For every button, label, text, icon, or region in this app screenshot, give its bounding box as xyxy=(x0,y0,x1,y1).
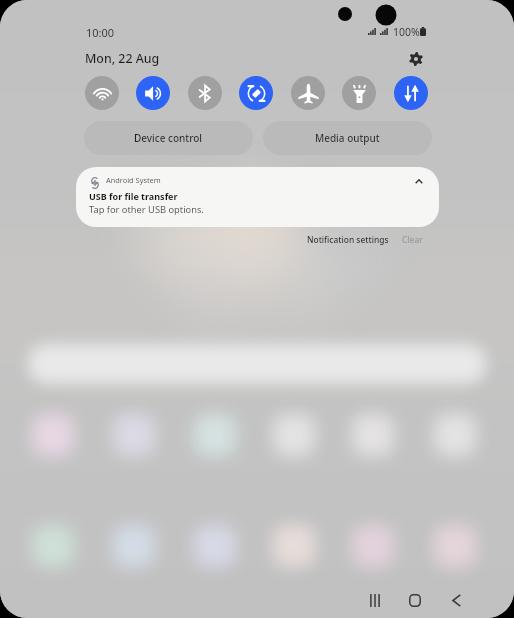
staticText: Media output xyxy=(315,131,380,145)
staticText: Mon, 22 Aug xyxy=(85,50,160,67)
button[interactable]: Media output xyxy=(263,121,432,155)
button[interactable]: Airplane mode xyxy=(291,76,325,110)
button[interactable]: Mobile data xyxy=(394,76,428,110)
button[interactable]: Recents xyxy=(358,583,392,617)
button[interactable]: Bluetooth xyxy=(188,76,222,110)
button[interactable]: Flashlight xyxy=(342,76,376,110)
staticText: Device control xyxy=(134,131,203,145)
button[interactable]: Android System xyxy=(76,167,439,227)
button[interactable]: Notification settings xyxy=(307,234,389,245)
button[interactable]: Sound xyxy=(136,76,170,110)
button[interactable]: Back xyxy=(439,583,473,617)
button[interactable]: Home xyxy=(398,583,432,617)
staticText: 100% xyxy=(393,25,420,39)
staticText: Android System xyxy=(106,175,161,185)
button[interactable]: Settings xyxy=(403,46,429,72)
button[interactable]: Device control xyxy=(84,121,253,155)
staticText: 10:00 xyxy=(86,25,115,40)
button[interactable]: Clear xyxy=(402,234,423,245)
staticText: Notification settings xyxy=(307,234,389,245)
button[interactable]: Collapse notification xyxy=(407,169,431,193)
staticText: USB for file transfer xyxy=(89,190,178,202)
button[interactable]: Wi-Fi xyxy=(85,76,119,110)
staticText: Clear xyxy=(402,234,423,245)
staticText: Tap for other USB options. xyxy=(89,203,204,216)
button[interactable]: Auto rotate xyxy=(239,76,273,110)
